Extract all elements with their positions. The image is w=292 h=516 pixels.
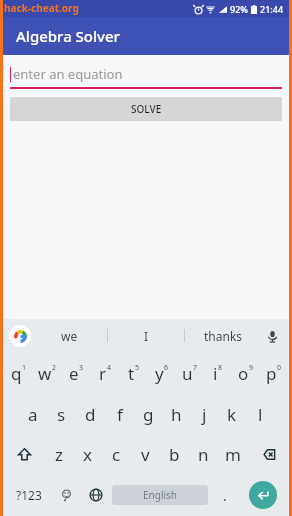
staticText: t — [128, 362, 135, 385]
staticText: o — [238, 362, 249, 385]
button[interactable]: h — [162, 394, 190, 434]
staticText: m — [225, 443, 241, 466]
button[interactable]: English — [112, 485, 208, 505]
staticText: z — [55, 443, 63, 466]
button[interactable]: Enter — [249, 481, 277, 509]
button[interactable]: Voice input — [261, 325, 283, 347]
staticText: u — [182, 362, 193, 385]
staticText: f — [117, 403, 123, 426]
staticText: w — [38, 362, 52, 385]
staticText: d — [85, 403, 96, 426]
staticText: p — [266, 362, 277, 385]
button[interactable]: j — [190, 394, 218, 434]
staticText: q — [11, 362, 22, 385]
button[interactable]: enter an equation — [10, 61, 282, 87]
staticText: Algebra Solver — [16, 26, 120, 46]
button[interactable]: f — [105, 394, 134, 434]
staticText: k — [227, 403, 237, 426]
staticText: i — [213, 362, 218, 385]
button[interactable]: Change language — [81, 474, 110, 516]
staticText: 3 — [79, 363, 84, 373]
button[interactable]: p — [260, 352, 288, 394]
button[interactable]: q — [4, 352, 33, 394]
button[interactable]: g — [134, 394, 162, 434]
staticText: 21:44 — [260, 3, 284, 15]
button[interactable]: y — [148, 352, 176, 394]
button[interactable]: we — [31, 319, 107, 352]
staticText: 9 — [249, 363, 254, 373]
staticText: c — [112, 443, 121, 466]
staticText: 7 — [193, 363, 198, 373]
button[interactable]: u — [176, 352, 204, 394]
staticText: we — [61, 328, 78, 344]
button[interactable]: I — [108, 319, 184, 352]
staticText: I — [144, 328, 149, 344]
staticText: English — [143, 488, 178, 502]
staticText: v — [141, 443, 150, 466]
button[interactable]: a — [18, 394, 47, 434]
staticText: enter an equation — [13, 65, 123, 83]
button[interactable]: c — [102, 434, 131, 474]
staticText: y — [155, 362, 164, 385]
staticText: hack-cheat.org — [4, 1, 79, 15]
staticText: e — [69, 362, 79, 385]
button[interactable]: w — [33, 352, 62, 394]
staticText: SOLVE — [131, 102, 162, 116]
staticText: b — [169, 443, 180, 466]
button[interactable]: thanks — [185, 319, 261, 352]
button[interactable]: s — [47, 394, 76, 434]
button[interactable]: r — [91, 352, 120, 394]
button[interactable]: Backspace — [247, 434, 288, 474]
staticText: h — [171, 403, 182, 426]
staticText: g — [143, 403, 154, 426]
staticText: 4 — [107, 363, 112, 373]
button[interactable]: d — [76, 394, 105, 434]
staticText: s — [57, 403, 66, 426]
button[interactable]: t — [120, 352, 148, 394]
staticText: l — [258, 403, 263, 426]
staticText: . — [223, 486, 227, 505]
staticText: 6 — [164, 363, 169, 373]
button[interactable]: o — [232, 352, 260, 394]
button[interactable]: k — [218, 394, 246, 434]
staticText: 8 — [218, 363, 223, 373]
staticText: 92% — [230, 3, 248, 15]
button[interactable]: l — [246, 394, 274, 434]
staticText: a — [28, 403, 38, 426]
button[interactable]: b — [160, 434, 189, 474]
staticText: n — [198, 443, 209, 466]
staticText: ?123 — [16, 487, 42, 503]
staticText: 2 — [52, 363, 57, 373]
button[interactable]: Google — [9, 325, 31, 347]
staticText: 5 — [135, 363, 140, 373]
staticText: x — [83, 443, 92, 466]
button[interactable]: e — [62, 352, 91, 394]
staticText: j — [202, 403, 207, 426]
button[interactable]: m — [218, 434, 247, 474]
button[interactable]: . — [210, 474, 239, 516]
staticText: 0 — [277, 363, 282, 373]
button[interactable]: i — [204, 352, 232, 394]
staticText: 1 — [22, 363, 27, 373]
button[interactable]: x — [73, 434, 102, 474]
button[interactable]: SOLVE — [10, 97, 282, 121]
staticText: r — [99, 362, 107, 385]
staticText: thanks — [204, 328, 243, 344]
button[interactable]: Emoji — [51, 474, 81, 516]
button[interactable]: n — [189, 434, 218, 474]
button[interactable]: Shift — [4, 434, 44, 474]
button[interactable]: z — [44, 434, 73, 474]
button[interactable]: ?123 — [6, 474, 51, 516]
button[interactable]: v — [131, 434, 160, 474]
